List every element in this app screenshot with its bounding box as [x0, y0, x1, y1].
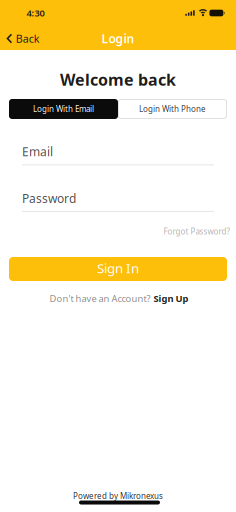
staticText: Login: [101, 30, 134, 46]
staticText: Forgot Password?: [163, 226, 229, 237]
staticText: Login With Phone: [139, 104, 206, 114]
button[interactable]: Email: [22, 144, 214, 165]
staticText: Sign In: [97, 259, 139, 277]
button[interactable]: Login With Phone: [118, 99, 227, 119]
staticText: 4:30: [26, 7, 44, 19]
staticText: Sign Up: [153, 292, 188, 305]
button[interactable]: Password: [22, 190, 214, 212]
button[interactable]: Forgot Password?: [163, 226, 229, 237]
button[interactable]: Sign In: [9, 257, 227, 281]
staticText: Password: [22, 190, 76, 206]
button[interactable]: Sign Up: [153, 292, 188, 305]
staticText: Don't have an Account?: [49, 292, 150, 305]
staticText: Login With Email: [33, 104, 94, 114]
button[interactable]: Login With Email: [9, 99, 118, 119]
staticText: Welcome back: [60, 69, 176, 90]
button[interactable]: Back: [6, 31, 40, 46]
staticText: Email: [22, 144, 53, 160]
staticText: Back: [16, 31, 40, 46]
staticText: Powered by Mikronexus: [73, 491, 163, 501]
